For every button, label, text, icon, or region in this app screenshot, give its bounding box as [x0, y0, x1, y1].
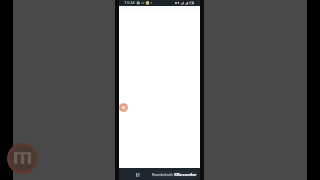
- button[interactable]: Action: [119, 103, 128, 112]
- button[interactable]: Pause recording: [132, 169, 142, 179]
- button[interactable]: Recorded with XRecorder: [152, 171, 197, 178]
- staticText: 13:24: [124, 0, 135, 6]
- staticText: Recorded with: [152, 173, 173, 177]
- staticText: XRecorder: [174, 172, 197, 178]
